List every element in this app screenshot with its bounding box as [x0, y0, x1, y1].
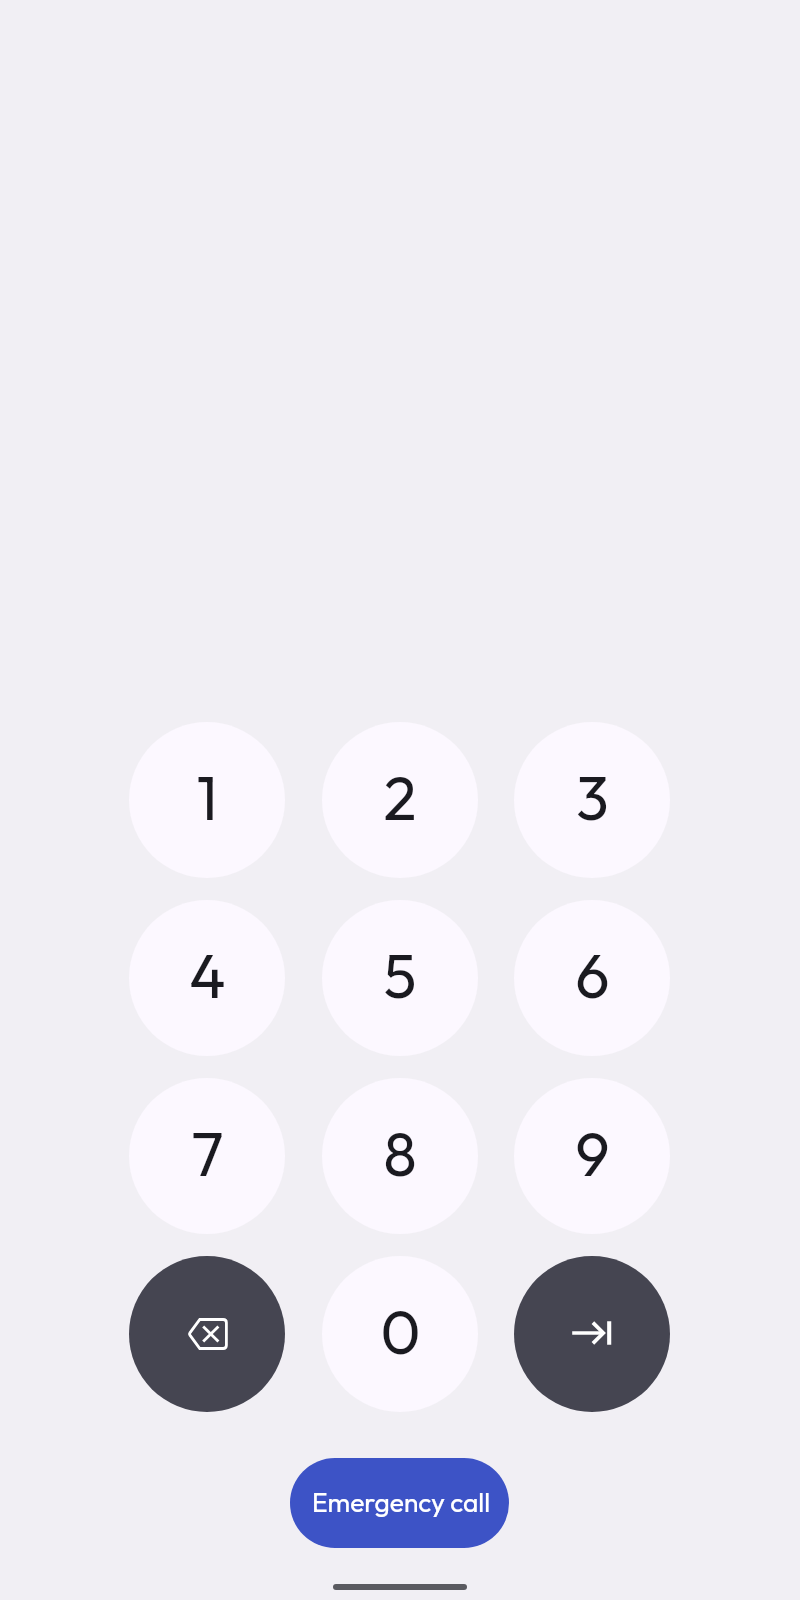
button[interactable]: 9 — [514, 1078, 670, 1234]
button[interactable]: Backspace — [129, 1256, 285, 1412]
button[interactable]: 6 — [514, 900, 670, 1056]
staticText: Emergency call — [312, 1486, 491, 1519]
staticText: 2 — [383, 759, 417, 836]
button[interactable]: 2 — [322, 722, 478, 878]
button[interactable]: Enter — [514, 1256, 670, 1412]
staticText: 5 — [383, 937, 417, 1014]
staticText: 0 — [380, 1293, 421, 1370]
button[interactable]: 3 — [514, 722, 670, 878]
staticText: 9 — [575, 1115, 610, 1192]
button[interactable]: 5 — [322, 900, 478, 1056]
button[interactable]: 0 — [322, 1256, 478, 1412]
button[interactable]: 7 — [129, 1078, 285, 1234]
staticText: 4 — [189, 937, 226, 1014]
staticText: 1 — [196, 759, 218, 836]
button[interactable]: 4 — [129, 900, 285, 1056]
staticText: 8 — [383, 1115, 417, 1192]
button[interactable]: 1 — [129, 722, 285, 878]
staticText: 7 — [191, 1115, 224, 1192]
staticText: 3 — [576, 759, 609, 836]
button[interactable]: Emergency call — [290, 1458, 509, 1548]
staticText: 6 — [575, 937, 610, 1014]
button[interactable]: 8 — [322, 1078, 478, 1234]
